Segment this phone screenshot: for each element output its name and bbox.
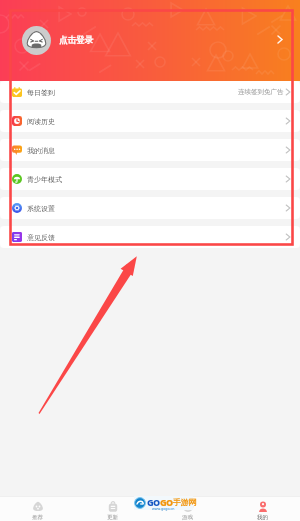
staticText: 游戏 — [182, 514, 193, 521]
button[interactable]: 每日签到 — [0, 81, 300, 103]
button[interactable]: 系统设置 — [0, 197, 300, 219]
staticText: 更新 — [107, 514, 118, 521]
staticText: 意见反馈 — [27, 233, 55, 242]
staticText: www.gogo.cn — [152, 506, 175, 511]
button[interactable]: 推荐 — [0, 497, 75, 521]
button[interactable]: 阅读历史 — [0, 110, 300, 132]
staticText: 阅读历史 — [27, 117, 55, 126]
staticText: 青少年模式 — [27, 175, 62, 184]
button[interactable]: 我的消息 — [0, 139, 300, 161]
button[interactable]: 游戏 — [150, 497, 225, 521]
staticText: 连续签到免广告 — [238, 88, 284, 96]
button[interactable]: 更新 — [75, 497, 150, 521]
staticText: 每日签到 — [27, 88, 55, 97]
button[interactable]: 意见反馈 — [0, 226, 300, 248]
button[interactable]: 我的 — [225, 497, 300, 521]
button[interactable]: Open profile — [273, 32, 287, 46]
staticText: 手游网 — [173, 497, 196, 507]
staticText: 系统设置 — [27, 204, 55, 213]
staticText: 我的消息 — [27, 146, 55, 155]
button[interactable]: 点击登录 — [0, 0, 300, 81]
staticText: GO — [160, 496, 173, 508]
staticText: 推荐 — [32, 514, 43, 521]
staticText: GO — [147, 496, 160, 508]
staticText: 我的 — [257, 514, 268, 521]
button[interactable]: 青少年模式 — [0, 168, 300, 190]
staticText: 点击登录 — [59, 35, 93, 46]
